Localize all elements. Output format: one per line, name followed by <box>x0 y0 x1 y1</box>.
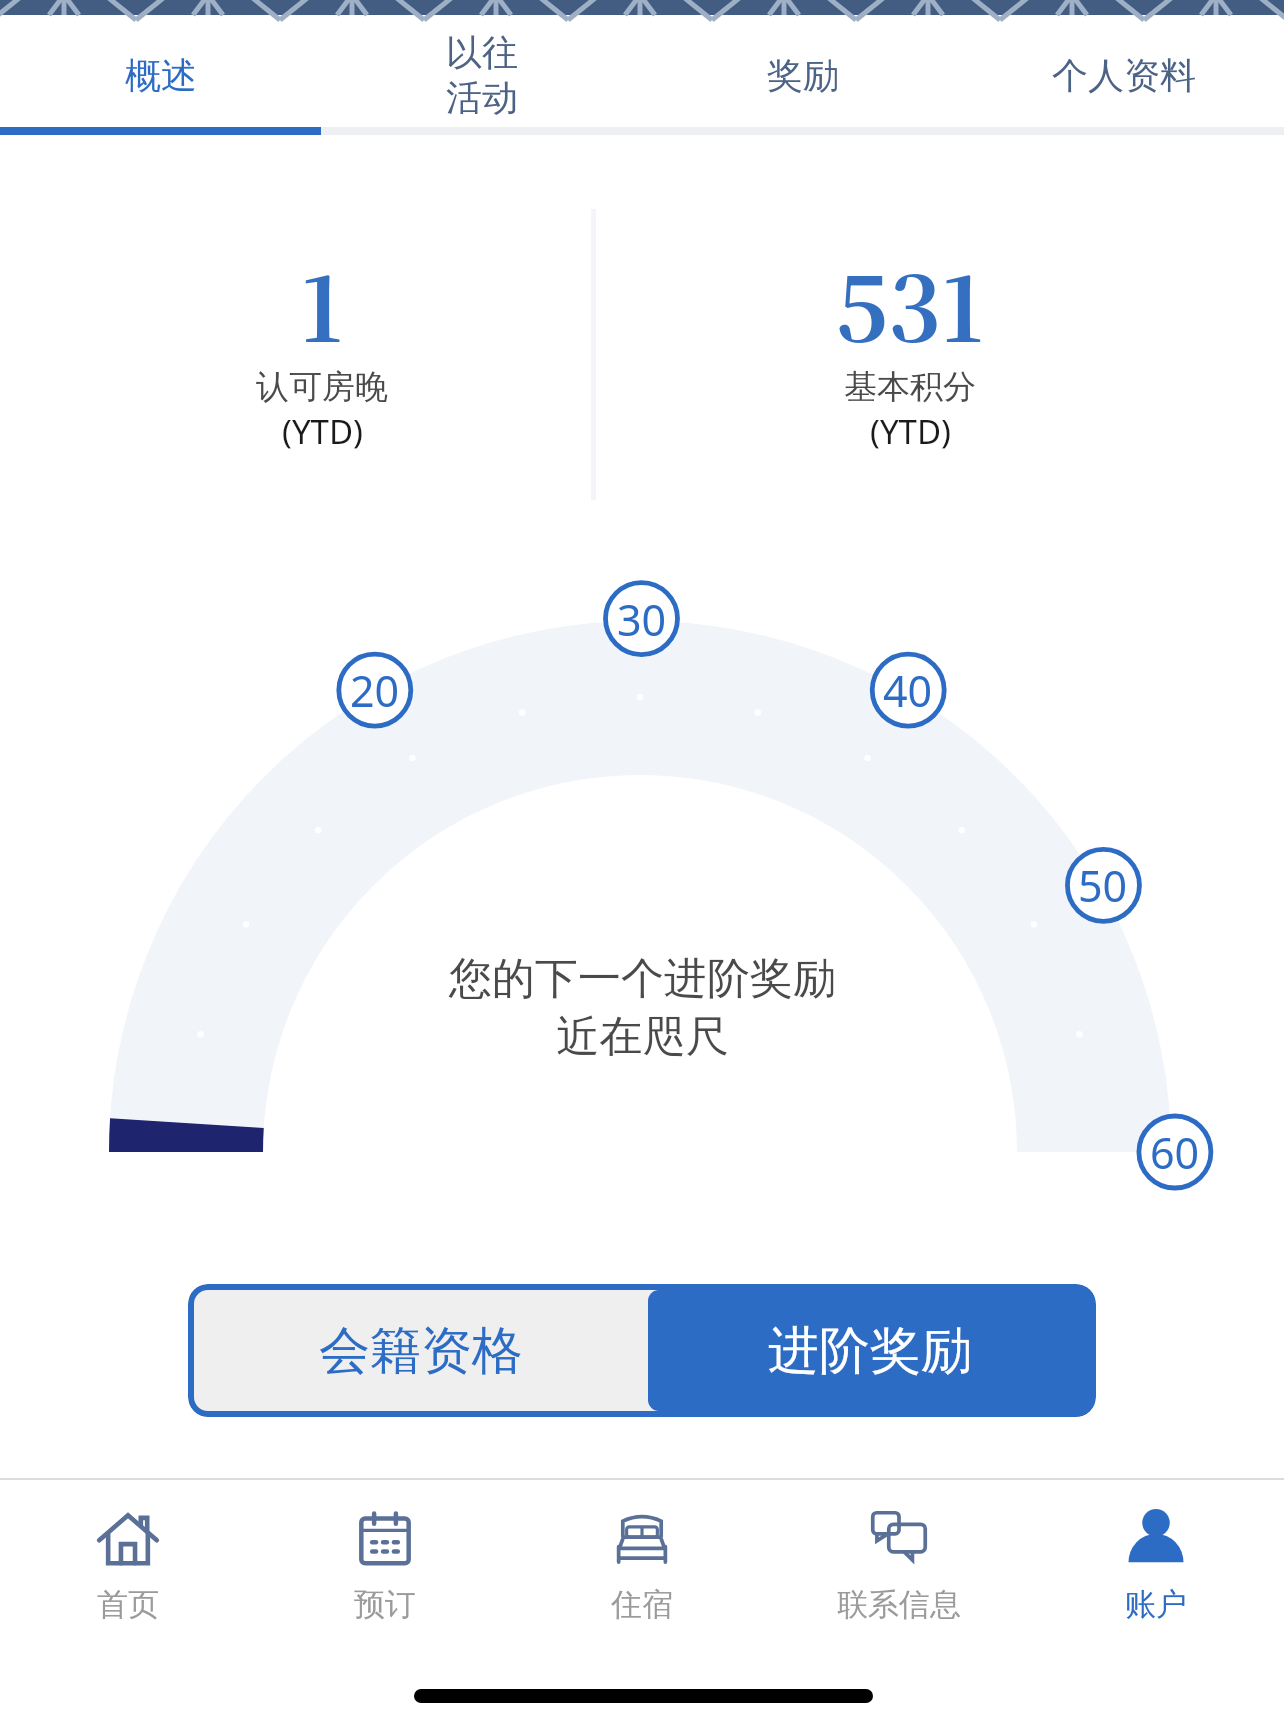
staticText: 您的下一个进阶奖励 近在咫尺 <box>449 952 836 1064</box>
staticText: 30 <box>617 590 667 649</box>
button[interactable]: Stays <box>513 1498 770 1628</box>
staticText: 1 <box>301 240 343 368</box>
button[interactable]: Account <box>1027 1498 1284 1628</box>
staticText: 进阶奖励 <box>768 1319 972 1383</box>
staticText: 以往 活动 <box>446 30 518 121</box>
button[interactable]: Bookings <box>256 1498 513 1628</box>
staticText: 预订 <box>354 1585 416 1624</box>
staticText: 联系信息 <box>837 1585 961 1624</box>
staticText: 531 <box>836 240 984 368</box>
button[interactable]: 概述 <box>0 15 321 127</box>
button[interactable]: Home <box>0 1498 256 1628</box>
staticText: 个人资料 <box>1052 53 1196 98</box>
button[interactable]: 奖励 <box>642 15 963 127</box>
staticText: 账户 <box>1125 1585 1187 1624</box>
button[interactable]: Contact <box>770 1498 1027 1628</box>
button[interactable]: 进阶奖励 <box>648 1290 1091 1411</box>
staticText: 60 <box>1150 1123 1200 1182</box>
staticText: 40 <box>883 661 933 720</box>
staticText: (YTD) <box>870 409 951 454</box>
button[interactable]: 会籍资格 <box>194 1290 648 1411</box>
staticText: 首页 <box>97 1585 159 1624</box>
staticText: 会籍资格 <box>319 1319 523 1383</box>
button[interactable]: 个人资料 <box>963 15 1284 127</box>
staticText: 50 <box>1078 856 1128 915</box>
staticText: 基本积分 <box>844 366 976 408</box>
button[interactable]: 以往 活动 <box>321 15 642 127</box>
staticText: 20 <box>350 661 400 720</box>
staticText: 概述 <box>125 53 197 98</box>
staticText: 住宿 <box>611 1585 673 1624</box>
staticText: 认可房晚 <box>256 366 388 408</box>
staticText: (YTD) <box>282 409 363 454</box>
staticText: 奖励 <box>767 53 839 98</box>
